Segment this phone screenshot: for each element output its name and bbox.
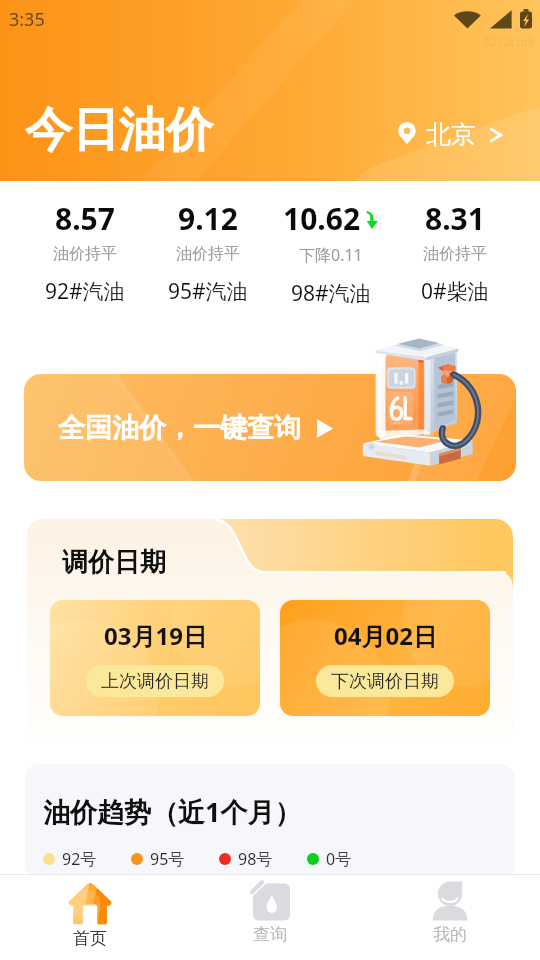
staticText: 调价日期 bbox=[62, 546, 166, 579]
staticText: 04月02日 bbox=[334, 619, 437, 652]
staticText: 98#汽油 bbox=[291, 279, 371, 308]
staticText: 0#柴油 bbox=[421, 277, 489, 306]
staticText: 今日油价 bbox=[25, 101, 213, 160]
staticText: 8.31 bbox=[425, 198, 485, 239]
staticText: 下次调价日期 bbox=[331, 670, 439, 693]
staticText: 95#汽油 bbox=[168, 277, 248, 306]
staticText: 03月19日 bbox=[104, 619, 207, 652]
button[interactable]: 10.62 bbox=[269, 182, 393, 323]
button[interactable]: 04月02日 bbox=[280, 600, 490, 716]
button[interactable]: 8.57 bbox=[23, 182, 146, 323]
staticText: 3:35 bbox=[9, 7, 45, 32]
button[interactable]: 北京 bbox=[396, 111, 504, 150]
other: 我的 bbox=[430, 881, 470, 921]
staticText: 我的 bbox=[433, 924, 467, 945]
button[interactable]: 全国油价，一键查询 bbox=[24, 374, 516, 481]
staticText: 95号 bbox=[150, 848, 185, 870]
staticText: 油价持平 bbox=[53, 244, 117, 264]
staticText: 下降0.11 bbox=[299, 244, 363, 266]
staticText: 92#汽油 bbox=[45, 277, 125, 306]
other: Status bbox=[454, 9, 532, 29]
staticText: 5272c1b9 bbox=[484, 34, 534, 49]
staticText: 全国油价，一键查询 bbox=[58, 411, 301, 445]
button[interactable]: 8.31 bbox=[393, 182, 517, 323]
button[interactable]: 9.12 bbox=[146, 182, 269, 323]
other: 查询 bbox=[250, 881, 290, 921]
staticText: 北京 bbox=[426, 119, 476, 150]
button[interactable]: 首页 bbox=[0, 875, 180, 960]
staticText: 油价趋势（近1个月） bbox=[43, 793, 302, 830]
staticText: 9.12 bbox=[178, 198, 238, 239]
staticText: 上次调价日期 bbox=[101, 670, 209, 693]
staticText: 油价持平 bbox=[423, 244, 487, 264]
staticText: 98号 bbox=[238, 848, 273, 870]
button[interactable]: 查询 bbox=[180, 875, 360, 960]
staticText: 8.57 bbox=[55, 198, 115, 239]
staticText: 10.62 bbox=[283, 198, 361, 239]
button[interactable]: 我的 bbox=[360, 875, 540, 960]
button[interactable]: 03月19日 bbox=[50, 600, 260, 716]
staticText: 92号 bbox=[62, 848, 97, 870]
staticText: 油价持平 bbox=[176, 244, 240, 264]
staticText: 查询 bbox=[253, 924, 287, 945]
staticText: 首页 bbox=[73, 928, 107, 949]
staticText: 0号 bbox=[326, 848, 352, 870]
